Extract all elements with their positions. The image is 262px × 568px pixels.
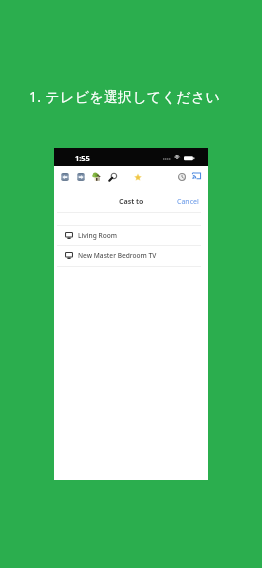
staticText: 1. テレビを選択してください	[29, 87, 221, 106]
button[interactable]: Home	[89, 168, 105, 186]
button[interactable]: Cast	[188, 167, 204, 185]
button[interactable]: Search	[104, 168, 120, 186]
button[interactable]: History	[174, 168, 190, 186]
staticText: 1:55	[75, 153, 90, 163]
staticText: Cast to	[119, 197, 144, 207]
button[interactable]: Living Room	[54, 225, 208, 245]
button[interactable]: New Master Bedroom TV	[54, 245, 208, 265]
staticText: New Master Bedroom TV	[78, 251, 157, 260]
button[interactable]: Back	[57, 168, 73, 186]
button[interactable]: Forward	[73, 168, 89, 186]
button[interactable]: Bookmarks	[130, 168, 146, 186]
button[interactable]: Cancel	[173, 192, 203, 212]
staticText: Cancel	[177, 197, 199, 207]
staticText: Living Room	[78, 231, 117, 240]
